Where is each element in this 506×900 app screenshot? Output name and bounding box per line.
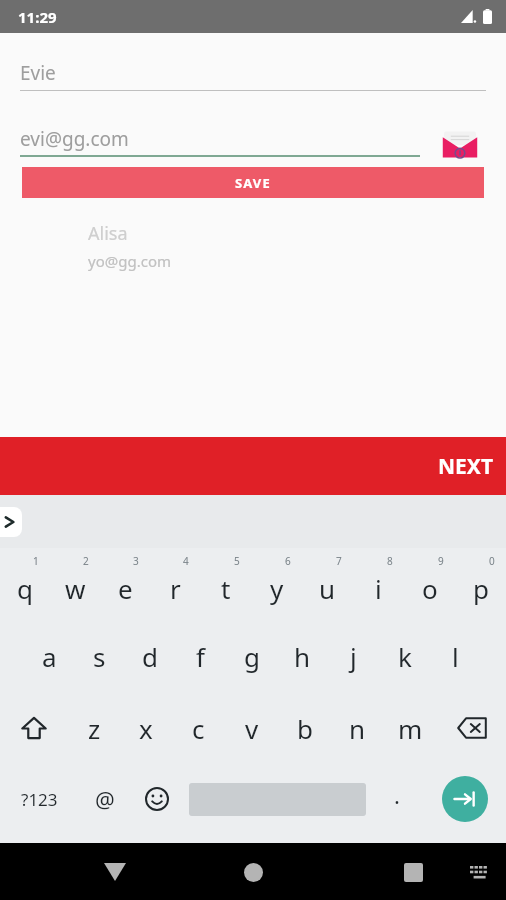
button[interactable]: 7	[302, 548, 353, 620]
staticText: 4	[183, 554, 189, 568]
button[interactable]: d	[124, 620, 175, 692]
staticText: 1	[33, 554, 39, 568]
staticText: 0	[489, 554, 495, 568]
staticText: k	[398, 639, 412, 674]
button[interactable]: Expand suggestions	[0, 507, 22, 537]
staticText: w	[65, 571, 86, 606]
staticText: s	[93, 639, 106, 674]
staticText: t	[221, 571, 231, 606]
button[interactable]: b	[278, 692, 331, 764]
button[interactable]: k	[379, 620, 430, 692]
button[interactable]: a	[24, 620, 74, 692]
staticText: 2	[83, 554, 89, 568]
button[interactable]: Recent apps	[390, 849, 436, 895]
button[interactable]: Evie	[20, 55, 486, 91]
staticText: g	[244, 639, 260, 674]
button[interactable]: Alisa	[88, 221, 128, 246]
button[interactable]: l	[430, 620, 481, 692]
staticText: SAVE	[235, 174, 271, 192]
staticText: ?123	[21, 788, 58, 811]
button[interactable]: v	[225, 692, 278, 764]
staticText: y	[270, 571, 284, 606]
staticText: f	[196, 639, 205, 674]
button[interactable]: Back	[92, 849, 138, 895]
button[interactable]: Space	[183, 764, 371, 834]
button[interactable]: Email	[438, 121, 482, 165]
button[interactable]: c	[172, 692, 225, 764]
staticText: Alisa	[88, 221, 128, 246]
staticText: m	[398, 711, 423, 746]
staticText: a	[42, 639, 57, 674]
staticText: z	[88, 711, 101, 746]
button[interactable]: m	[384, 692, 437, 764]
button[interactable]: 4	[150, 548, 200, 620]
staticText: NEXT	[438, 452, 494, 481]
button[interactable]: Emoji	[131, 764, 183, 834]
button[interactable]: .	[371, 764, 423, 834]
staticText: q	[17, 571, 33, 606]
staticText: i	[375, 571, 382, 606]
button[interactable]: j	[328, 620, 379, 692]
staticText: c	[192, 711, 205, 746]
button[interactable]: x	[120, 692, 172, 764]
button[interactable]: evi@gg.com	[20, 121, 420, 157]
button[interactable]: SAVE	[22, 167, 484, 198]
staticText: 11:29	[18, 7, 57, 27]
staticText: u	[319, 571, 336, 606]
button[interactable]: g	[226, 620, 277, 692]
button[interactable]: 6	[251, 548, 302, 620]
button[interactable]: 3	[100, 548, 150, 620]
staticText: p	[473, 571, 489, 606]
staticText: .	[394, 780, 400, 810]
staticText: o	[422, 571, 438, 606]
button[interactable]: n	[331, 692, 384, 764]
staticText: 5	[234, 554, 240, 568]
staticText: yo@gg.com	[88, 251, 171, 271]
staticText: b	[297, 711, 313, 746]
button[interactable]: NEXT	[0, 437, 506, 495]
button[interactable]: yo@gg.com	[88, 251, 171, 271]
staticText: evi@gg.com	[20, 126, 129, 152]
button[interactable]: s	[74, 620, 124, 692]
staticText: v	[245, 711, 259, 746]
button[interactable]: z	[68, 692, 120, 764]
button[interactable]: Shift	[0, 692, 68, 764]
button[interactable]: Backspace	[437, 692, 506, 764]
staticText: j	[350, 639, 357, 674]
staticText: n	[349, 711, 366, 746]
staticText: l	[452, 639, 459, 674]
staticText: 9	[438, 554, 444, 568]
button[interactable]: Home	[230, 849, 276, 895]
staticText: x	[139, 711, 153, 746]
button[interactable]: 1	[0, 548, 50, 620]
button[interactable]: ?123	[0, 764, 79, 834]
staticText: r	[170, 571, 181, 606]
button[interactable]: 5	[200, 548, 251, 620]
button[interactable]: 9	[404, 548, 455, 620]
button[interactable]: @	[79, 764, 131, 834]
button[interactable]: 2	[50, 548, 100, 620]
button[interactable]: 8	[353, 548, 404, 620]
button[interactable]: Switch keyboard	[460, 852, 500, 892]
button[interactable]: Next field	[423, 764, 506, 834]
staticText: 3	[133, 554, 139, 568]
staticText: e	[118, 571, 133, 606]
staticText: 8	[387, 554, 393, 568]
staticText: 6	[285, 554, 291, 568]
staticText: h	[294, 639, 311, 674]
button[interactable]: h	[277, 620, 328, 692]
staticText: @	[95, 784, 115, 814]
button[interactable]: 0	[455, 548, 506, 620]
staticText: d	[142, 639, 158, 674]
staticText: 7	[336, 554, 342, 568]
button[interactable]: f	[175, 620, 226, 692]
staticText: Evie	[20, 60, 56, 86]
